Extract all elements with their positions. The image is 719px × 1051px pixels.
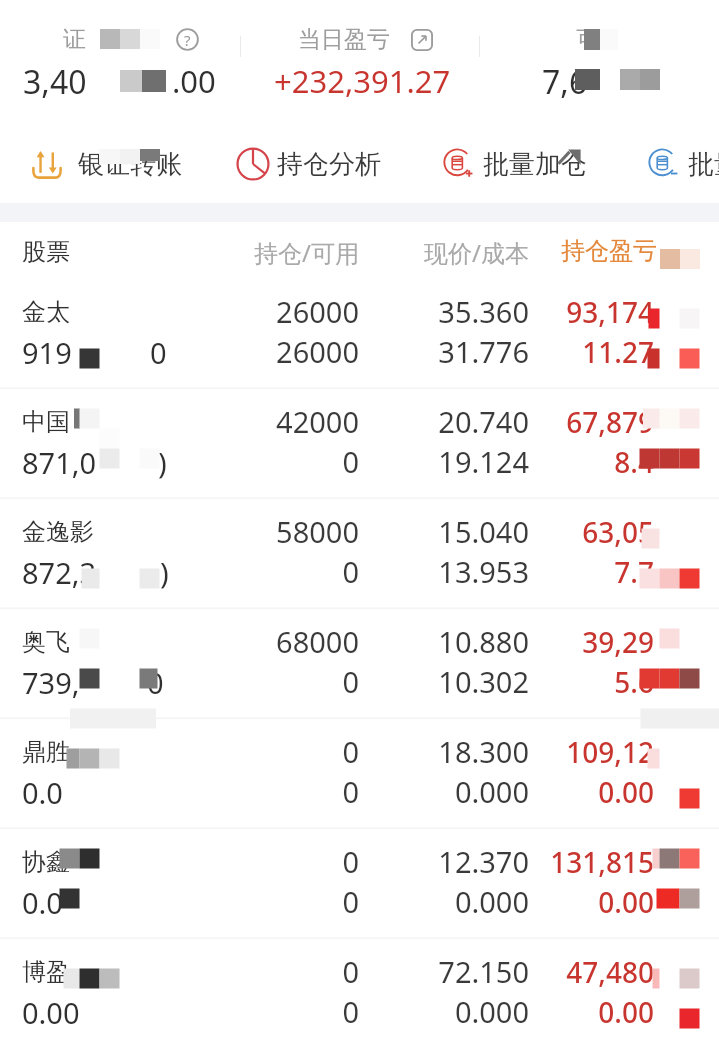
button[interactable]: 证: [0, 0, 240, 118]
staticText: 持仓盈亏: [561, 236, 657, 266]
staticText: .00: [172, 60, 216, 102]
button[interactable]: 可: [479, 0, 719, 118]
button[interactable]: 博盈: [0, 940, 719, 1049]
other: 展开: [411, 29, 433, 51]
staticText: 当日盈亏: [298, 25, 390, 54]
staticText: 31.776: [0, 332, 529, 371]
staticText: 0: [0, 952, 359, 991]
staticText: 871,0: [22, 443, 97, 482]
staticText: 18.300: [0, 732, 529, 771]
staticText: ): [160, 553, 169, 592]
staticText: ): [158, 443, 167, 482]
other: 帮助: [176, 28, 199, 51]
staticText: 0: [0, 992, 359, 1031]
staticText: 12.370: [0, 842, 529, 881]
staticText: 持仓/可用: [0, 236, 359, 269]
staticText: 中国: [22, 407, 70, 437]
staticText: 67,879: [0, 403, 654, 441]
staticText: 协鑫: [22, 847, 70, 877]
staticText: 47,480: [0, 953, 654, 991]
button[interactable]: 协鑫: [0, 830, 719, 939]
button[interactable]: 鼎胜: [0, 720, 719, 829]
staticText: 0.0: [22, 773, 63, 812]
staticText: +232,391.27: [274, 60, 451, 102]
staticText: 13.953: [0, 552, 529, 591]
staticText: 19.124: [0, 442, 529, 481]
staticText: 0: [150, 333, 167, 372]
staticText: 0: [147, 663, 164, 702]
staticText: ?: [184, 30, 191, 50]
staticText: 35.360: [0, 292, 529, 331]
button[interactable]: 持仓盈亏: [550, 222, 665, 280]
staticText: 可: [576, 25, 599, 54]
staticText: 股票: [22, 237, 70, 267]
staticText: 0.00: [0, 883, 654, 921]
staticText: 72.150: [0, 952, 529, 991]
staticText: 93,174: [0, 293, 654, 331]
staticText: 奥飞: [22, 627, 70, 657]
staticText: 739,: [22, 663, 80, 702]
staticText: 金逸影: [22, 517, 94, 547]
staticText: 0.000: [0, 772, 529, 811]
staticText: 58000: [0, 512, 359, 551]
button[interactable]: 奥飞: [0, 610, 719, 719]
staticText: 7.7: [0, 553, 654, 591]
staticText: 131,815: [0, 843, 654, 881]
staticText: 现价/成本: [0, 236, 529, 269]
staticText: 68000: [0, 622, 359, 661]
staticText: 872,3: [22, 553, 97, 592]
staticText: 0: [0, 882, 359, 921]
staticText: 0: [0, 442, 359, 481]
staticText: 42000: [0, 402, 359, 441]
staticText: 8.4: [0, 443, 654, 481]
staticText: 0: [0, 732, 359, 771]
staticText: 109,12: [0, 733, 654, 771]
button[interactable]: 银证转账: [30, 128, 182, 200]
staticText: 0.00: [0, 993, 654, 1031]
staticText: 鼎胜: [22, 737, 70, 767]
staticText: 持仓分析: [277, 148, 381, 181]
staticText: 39,29: [0, 623, 654, 661]
button[interactable]: 中国: [0, 390, 719, 499]
staticText: 0.000: [0, 992, 529, 1031]
staticText: 10.880: [0, 622, 529, 661]
staticText: 63,05: [0, 513, 654, 551]
button[interactable]: 批量加仓: [442, 128, 587, 200]
staticText: 0.00: [22, 993, 80, 1032]
staticText: 证: [63, 25, 86, 54]
button[interactable]: 持仓分析: [236, 128, 381, 200]
staticText: 26000: [0, 292, 359, 331]
staticText: 15.040: [0, 512, 529, 551]
button[interactable]: 当日盈亏: [240, 0, 479, 118]
staticText: 银证转账: [78, 148, 182, 181]
staticText: 0: [0, 772, 359, 811]
staticText: 919: [22, 333, 72, 372]
staticText: 3,40: [23, 60, 87, 104]
staticText: 0.000: [0, 882, 529, 921]
staticText: 0.00: [0, 773, 654, 811]
staticText: 0.0: [22, 883, 63, 922]
staticText: 批量加仓: [483, 148, 587, 181]
staticText: 7,6: [542, 60, 588, 104]
staticText: 0: [0, 842, 359, 881]
staticText: 26000: [0, 332, 359, 371]
staticText: 0: [0, 662, 359, 701]
staticText: 金太: [22, 297, 70, 327]
staticText: 10.302: [0, 662, 529, 701]
staticText: 批量减仓: [688, 148, 719, 181]
staticText: 博盈: [22, 957, 70, 987]
staticText: 20.740: [0, 402, 529, 441]
button[interactable]: 金太: [0, 280, 719, 389]
button[interactable]: 金逸影: [0, 500, 719, 609]
staticText: 0: [0, 552, 359, 591]
staticText: 5.6: [0, 663, 654, 701]
staticText: 11.27: [0, 333, 654, 371]
button[interactable]: 批量减仓: [647, 128, 719, 200]
